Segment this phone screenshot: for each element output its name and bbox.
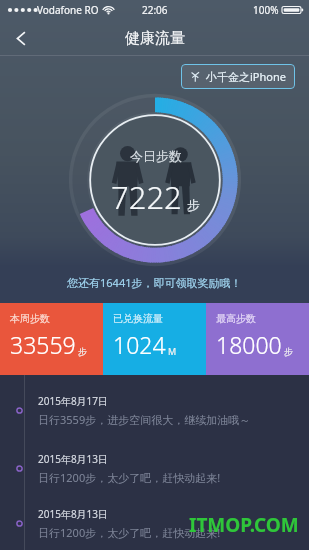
staticText: 步 [187, 197, 200, 213]
staticText: 本周步数 [10, 312, 50, 325]
button[interactable]: Back [3, 20, 39, 56]
button[interactable]: 本周步数 [0, 303, 103, 375]
staticText: 33559 [10, 329, 76, 360]
staticText: 今日步数 [130, 148, 182, 164]
staticText: 22:06 [142, 3, 168, 17]
staticText: 18000 [216, 329, 282, 360]
staticText: 最高步数 [216, 312, 256, 325]
button[interactable]: 2015年8月13日 [0, 497, 309, 550]
staticText: 2015年8月17日 [38, 394, 109, 408]
staticText: 步 [78, 346, 87, 357]
staticText: 日行3559步，进步空间很大，继续加油哦～ [38, 412, 251, 427]
staticText: 1024 [113, 329, 166, 360]
staticText: M [168, 345, 177, 357]
staticText: ITMOP.COM [189, 512, 299, 538]
staticText: 您还有16441步，即可领取奖励哦！ [67, 275, 242, 290]
staticText: 已兑换流量 [113, 312, 163, 325]
staticText: Vodafone RO [37, 3, 99, 17]
staticText: 日行1200步，太少了吧，赶快动起来! [38, 525, 221, 540]
button[interactable]: 小千金之iPhone [181, 64, 295, 89]
staticText: 小千金之iPhone [206, 69, 286, 84]
staticText: 日行1200步，太少了吧，赶快动起来! [38, 470, 221, 485]
staticText: 2015年8月13日 [38, 507, 109, 521]
staticText: 步 [284, 346, 293, 357]
button[interactable]: 已兑换流量 [103, 303, 206, 375]
staticText: 100% [253, 3, 279, 17]
staticText: 2015年8月13日 [38, 452, 109, 466]
button[interactable]: 2015年8月17日 [0, 381, 309, 439]
button[interactable]: 最高步数 [206, 303, 309, 375]
staticText: 7222 [111, 176, 182, 218]
button[interactable]: 2015年8月13日 [0, 439, 309, 497]
staticText: 健康流量 [125, 29, 185, 48]
